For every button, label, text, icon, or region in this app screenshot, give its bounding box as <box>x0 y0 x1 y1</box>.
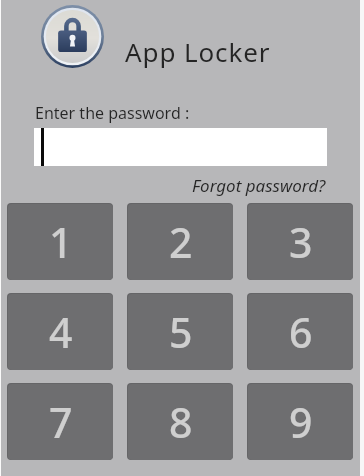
staticText: 4 <box>49 304 73 360</box>
button[interactable]: 9 <box>248 384 353 460</box>
button[interactable]: 3 <box>248 204 353 280</box>
button[interactable]: 8 <box>128 384 233 460</box>
staticText: 8 <box>169 394 193 450</box>
staticText: 9 <box>289 394 313 450</box>
button[interactable]: 2 <box>128 204 233 280</box>
staticText: Forgot password? <box>192 174 326 197</box>
button[interactable]: 4 <box>8 294 113 370</box>
button[interactable]: 5 <box>128 294 233 370</box>
other: App lock <box>41 5 104 68</box>
staticText: 1 <box>49 214 73 270</box>
staticText: 3 <box>289 214 313 270</box>
button[interactable]: 1 <box>8 204 113 280</box>
staticText: 6 <box>289 304 313 360</box>
staticText: Enter the password : <box>35 102 190 124</box>
staticText: 5 <box>169 304 193 360</box>
staticText: 7 <box>49 394 73 450</box>
button[interactable]: Forgot password? <box>192 174 326 197</box>
staticText: 2 <box>169 214 193 270</box>
button[interactable] <box>34 128 327 166</box>
staticText: App Locker <box>125 34 271 69</box>
button[interactable]: 6 <box>248 294 353 370</box>
button[interactable]: 7 <box>8 384 113 460</box>
